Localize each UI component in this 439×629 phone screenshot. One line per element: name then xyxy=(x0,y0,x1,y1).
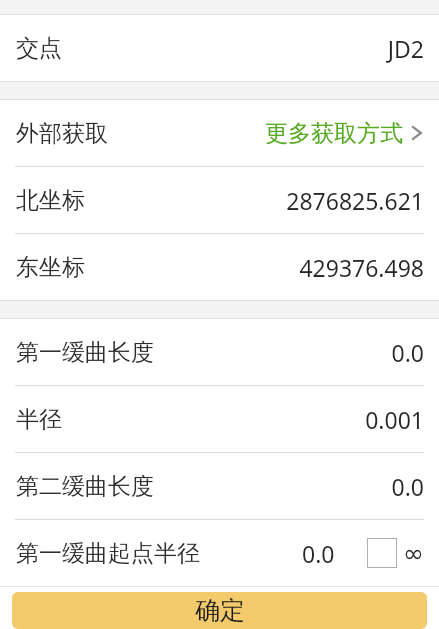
staticText: 东坐标 xyxy=(16,253,85,282)
staticText: 半径 xyxy=(16,405,62,434)
staticText: 429376.498 xyxy=(299,252,424,283)
button[interactable]: 第一缓曲起点半径 xyxy=(0,520,439,586)
staticText: JD2 xyxy=(387,33,424,64)
staticText: 外部获取 xyxy=(16,119,108,148)
button[interactable]: 交点 xyxy=(0,15,439,81)
button[interactable]: 确定 xyxy=(12,592,427,629)
staticText: 更多获取方式 xyxy=(265,119,403,148)
staticText: 0.0 xyxy=(391,337,424,368)
button[interactable]: 外部获取 xyxy=(0,100,439,166)
button[interactable]: 北坐标 xyxy=(0,167,439,233)
staticText: 0.0 xyxy=(391,471,424,502)
button[interactable]: 东坐标 xyxy=(0,234,439,300)
button[interactable]: 半径 xyxy=(0,386,439,452)
staticText: 第一缓曲起点半径 xyxy=(16,539,200,568)
staticText: 第一缓曲长度 xyxy=(16,338,154,367)
staticText: 0.001 xyxy=(365,404,424,435)
button[interactable]: 第一缓曲长度 xyxy=(0,319,439,385)
staticText: 交点 xyxy=(16,34,62,63)
staticText: ∞ xyxy=(403,539,424,568)
staticText: 第二缓曲长度 xyxy=(16,472,154,501)
staticText: 确定 xyxy=(195,595,245,626)
staticText: 0.0 xyxy=(302,538,335,569)
staticText: 北坐标 xyxy=(16,186,85,215)
button[interactable]: Infinite radius checkbox xyxy=(367,538,397,568)
staticText: 2876825.621 xyxy=(286,185,424,216)
button[interactable]: 第二缓曲长度 xyxy=(0,453,439,519)
